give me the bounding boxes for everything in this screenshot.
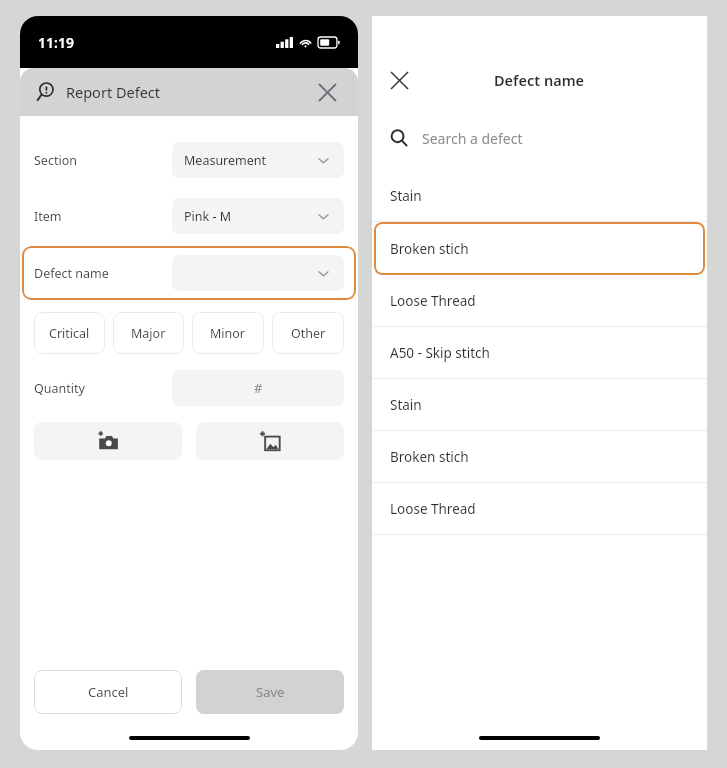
- button[interactable]: Stain: [372, 170, 707, 222]
- button[interactable]: Add image: [196, 422, 344, 460]
- button[interactable]: Close: [382, 63, 416, 97]
- staticText: Save: [256, 683, 285, 701]
- staticText: Quantity: [34, 380, 85, 397]
- button[interactable]: Broken stich: [374, 222, 705, 275]
- staticText: Stain: [390, 187, 422, 205]
- button[interactable]: Defect name: [22, 246, 356, 300]
- staticText: Broken stich: [390, 240, 469, 258]
- staticText: Broken stich: [390, 448, 469, 466]
- staticText: Loose Thread: [390, 292, 476, 310]
- staticText: Search a defect: [422, 129, 523, 148]
- staticText: Defect name: [34, 265, 109, 282]
- button[interactable]: Minor: [192, 312, 264, 354]
- staticText: A50 - Skip stitch: [390, 344, 490, 362]
- staticText: 11:19: [38, 33, 74, 52]
- staticText: Measurement: [184, 152, 267, 169]
- button[interactable]: Broken stich: [372, 431, 707, 483]
- staticText: Section: [34, 152, 77, 169]
- staticText: Defect name: [494, 70, 585, 90]
- staticText: Critical: [49, 325, 90, 342]
- button[interactable]: Other: [272, 312, 344, 354]
- button[interactable]: Stain: [372, 379, 707, 431]
- button[interactable]: Major: [113, 312, 184, 354]
- staticText: Stain: [390, 396, 422, 414]
- staticText: Cancel: [88, 683, 129, 701]
- staticText: Other: [291, 325, 326, 342]
- staticText: Item: [34, 208, 62, 225]
- button[interactable]: Search a defect: [372, 118, 707, 158]
- button[interactable]: Loose Thread: [372, 483, 707, 535]
- button[interactable]: Take photo: [34, 422, 182, 460]
- staticText: #: [254, 379, 263, 397]
- staticText: Pink - M: [184, 208, 232, 225]
- button[interactable]: Save: [196, 670, 344, 714]
- button[interactable]: Loose Thread: [372, 275, 707, 327]
- button[interactable]: Pink - M: [172, 198, 344, 234]
- button[interactable]: Measurement: [172, 142, 344, 178]
- staticText: Report Defect: [66, 82, 161, 102]
- staticText: Loose Thread: [390, 500, 476, 518]
- staticText: Major: [131, 325, 166, 342]
- button[interactable]: #: [172, 370, 344, 406]
- button[interactable]: A50 - Skip stitch: [372, 327, 707, 379]
- button[interactable]: Cancel: [34, 670, 182, 714]
- button[interactable]: Close: [312, 77, 342, 107]
- staticText: Minor: [210, 325, 246, 342]
- button[interactable]: Critical: [34, 312, 105, 354]
